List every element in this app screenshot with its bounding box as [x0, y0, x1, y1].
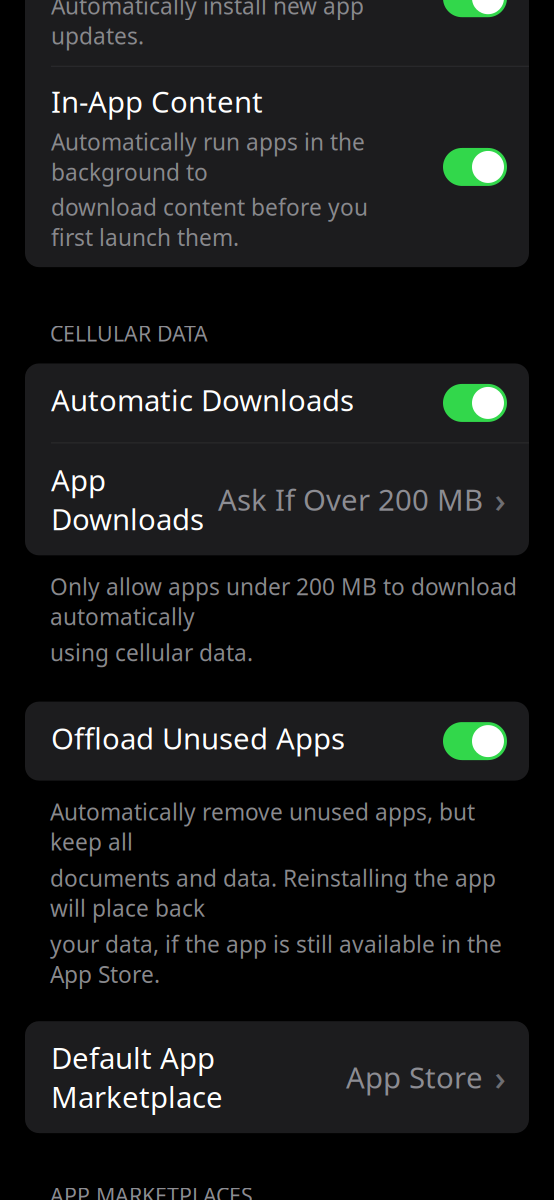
button[interactable]: Default App Marketplace [25, 1021, 529, 1133]
button[interactable]: App Updates [25, 0, 529, 66]
button[interactable]: Offload Unused Apps [25, 702, 529, 781]
staticText: Offload Unused Apps [51, 719, 345, 758]
staticText: Only allow apps under 200 MB to download… [50, 571, 517, 631]
staticText: Ask If Over 200 MB [218, 480, 483, 519]
button[interactable]: App Downloads [25, 443, 529, 555]
staticText: In-App Content [51, 82, 263, 121]
staticText: Automatically remove unused apps, but ke… [50, 797, 475, 857]
button[interactable]: Automatic Downloads [25, 363, 529, 442]
staticText: CELLULAR DATA [50, 319, 208, 347]
staticText: › [494, 476, 505, 522]
staticText: APP MARKETPLACES [50, 1181, 253, 1200]
staticText: Automatically run apps in the background… [51, 127, 365, 187]
staticText: › [494, 1054, 505, 1100]
staticText: documents and data. Reinstalling the app… [50, 863, 496, 923]
staticText: using cellular data. [50, 637, 253, 668]
staticText: download content before you first launch… [51, 192, 368, 252]
staticText: Automatic Downloads [51, 380, 354, 419]
staticText: your data, if the app is still available… [50, 929, 502, 989]
staticText: Automatically install new app updates. [51, 0, 364, 51]
button[interactable]: In-App Content [25, 67, 529, 267]
staticText: Default App Marketplace [51, 1038, 223, 1116]
staticText: App Store [346, 1058, 483, 1097]
staticText: App Downloads [51, 460, 204, 538]
